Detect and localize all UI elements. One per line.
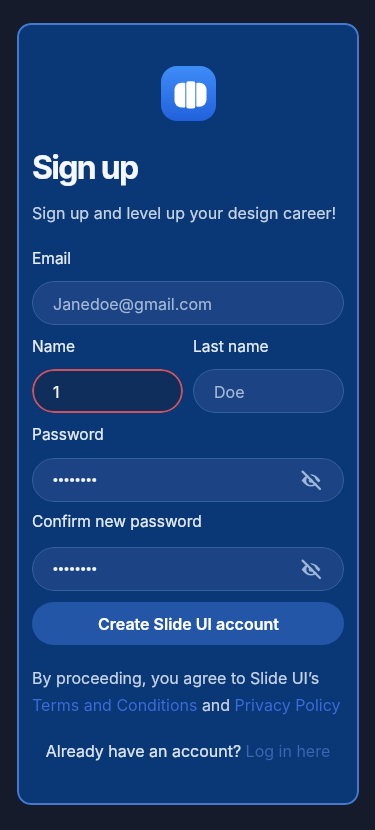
staticText: Last name	[193, 337, 269, 356]
button[interactable]	[32, 547, 344, 591]
button[interactable]: Janedoe@gmail.com	[32, 281, 344, 325]
staticText: Sign up and level up your design career!	[32, 203, 337, 222]
staticText: Doe	[214, 382, 245, 401]
button[interactable]: Create Slide UI account	[32, 602, 344, 645]
staticText: 1	[53, 382, 60, 401]
staticText: Create Slide UI account	[98, 614, 279, 633]
staticText: Janedoe@gmail.com	[53, 294, 212, 313]
staticText: Name	[32, 337, 75, 356]
staticText: Confirm new password	[32, 512, 202, 531]
staticText: By proceeding, you agree to Slide UI’s	[32, 668, 320, 687]
button[interactable]: 1	[32, 369, 183, 413]
staticText: Email	[32, 249, 72, 268]
staticText: Sign up	[32, 148, 138, 187]
staticText: Password	[32, 425, 104, 444]
button[interactable]: Already have an account? Log in here	[32, 741, 344, 760]
button[interactable]	[32, 458, 344, 502]
button[interactable]	[161, 66, 216, 121]
button[interactable]: Doe	[193, 369, 344, 413]
button[interactable]: Terms and Conditions and Privacy Policy	[32, 695, 341, 714]
